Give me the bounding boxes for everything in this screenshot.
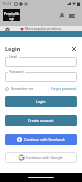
button[interactable]: Account — [58, 12, 66, 20]
button[interactable]: Remember me — [5, 87, 34, 91]
button[interactable]: Continue with Facebook — [5, 134, 77, 145]
button[interactable]: Create account — [5, 115, 77, 126]
staticText: Login — [36, 99, 46, 104]
button[interactable]: Forgot password — [51, 87, 77, 91]
staticText: 10:24 — [2, 1, 12, 6]
staticText: Create account — [28, 118, 54, 123]
staticText: Remember me — [11, 87, 34, 91]
staticText: Continue with Facebook — [24, 137, 65, 142]
button[interactable] — [5, 57, 77, 67]
button[interactable]: Menu — [68, 12, 76, 20]
staticText: Continue with Google — [26, 155, 63, 160]
staticText: shop — [8, 14, 15, 18]
staticText: Password — [9, 70, 24, 74]
button[interactable]: PrestaShop logo — [3, 9, 20, 21]
staticText: Most popular products — [25, 26, 62, 31]
staticText: Email — [9, 55, 18, 59]
button[interactable]: Close — [70, 45, 77, 52]
staticText: PrestaShop — [3, 11, 20, 21]
button[interactable]: Continue with Google — [5, 152, 77, 163]
button[interactable] — [5, 72, 77, 82]
button[interactable]: Login — [5, 96, 77, 107]
staticText: Login — [5, 45, 21, 52]
button[interactable]: Cart — [5, 27, 9, 31]
